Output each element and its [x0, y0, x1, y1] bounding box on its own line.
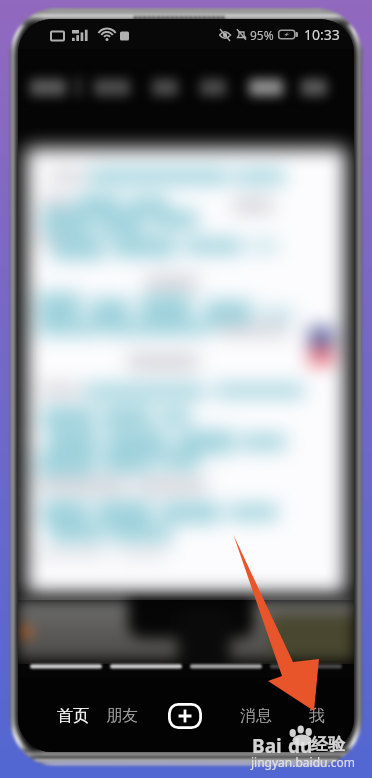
button[interactable]: 首页: [49, 703, 97, 729]
staticText: 10:33: [304, 25, 340, 44]
button[interactable]: 我: [301, 703, 333, 729]
button[interactable]: 朋友: [98, 703, 146, 729]
staticText: 消息: [240, 706, 272, 726]
staticText: Bai: [252, 733, 282, 759]
staticText: 首页: [57, 706, 89, 726]
staticText: jingyan.baidu.com: [251, 754, 355, 770]
staticText: 朋友: [106, 706, 138, 726]
button[interactable]: 消息: [232, 703, 280, 729]
staticText: du: [288, 733, 313, 759]
staticText: 我: [309, 706, 325, 726]
staticText: 95%: [250, 27, 274, 43]
staticText: 经验: [311, 734, 345, 755]
button[interactable]: Create post: [168, 703, 202, 729]
